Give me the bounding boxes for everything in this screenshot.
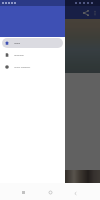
staticText: Taximeter [14, 54, 24, 57]
button[interactable]: Home [2, 38, 63, 48]
button[interactable]: Taximeter [2, 50, 63, 60]
staticText: Home [14, 42, 21, 45]
button[interactable]: Home [44, 186, 56, 198]
button[interactable]: About Taximeter [2, 62, 63, 72]
button[interactable]: Back [69, 187, 81, 199]
button[interactable]: Recent apps [17, 186, 29, 198]
staticText: About Taximeter [14, 66, 31, 69]
button[interactable]: More options [91, 9, 99, 17]
button[interactable]: Share [80, 7, 91, 18]
